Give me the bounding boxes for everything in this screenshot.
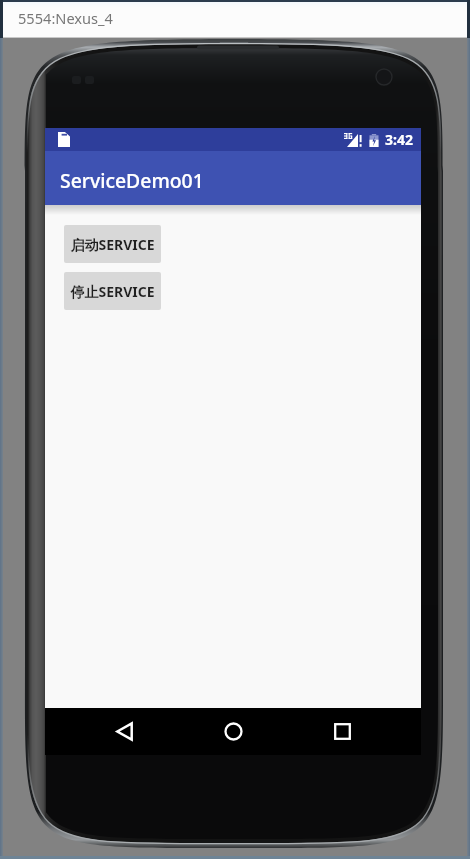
staticText: 启动SERVICE <box>70 235 155 254</box>
staticText: 3:42 <box>385 130 413 149</box>
button[interactable]: Home <box>207 708 259 755</box>
button[interactable]: 停止SERVICE <box>64 272 161 310</box>
button[interactable]: Back <box>98 708 150 755</box>
staticText: 停止SERVICE <box>70 282 155 301</box>
button[interactable]: Recents <box>316 708 369 755</box>
button[interactable]: 启动SERVICE <box>64 225 161 263</box>
staticText: 5554:Nexus_4 <box>18 8 113 28</box>
staticText: ServiceDemo01 <box>60 167 204 193</box>
